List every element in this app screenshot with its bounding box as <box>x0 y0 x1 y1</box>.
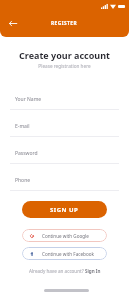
staticText: Phone <box>15 177 31 184</box>
staticText: Sign In <box>85 268 101 274</box>
button[interactable]: Continue with Facebook <box>22 247 107 260</box>
staticText: Already have an account? <box>29 268 85 274</box>
staticText: E-mail <box>15 123 30 130</box>
staticText: Password <box>15 150 38 157</box>
staticText: Continue with Google <box>42 233 89 239</box>
staticText: Create your account <box>0 49 129 61</box>
staticText: Your Name <box>15 96 42 103</box>
staticText: Please registration here <box>0 63 129 69</box>
button[interactable]: Continue with Google <box>22 229 107 242</box>
button[interactable]: Back <box>5 15 21 31</box>
staticText: REGISTER <box>51 20 78 27</box>
button[interactable]: SIGN UP <box>22 201 107 218</box>
button[interactable]: Already have an account? <box>0 268 129 274</box>
staticText: Continue with Facebook <box>42 251 94 257</box>
staticText: SIGN UP <box>50 206 79 214</box>
